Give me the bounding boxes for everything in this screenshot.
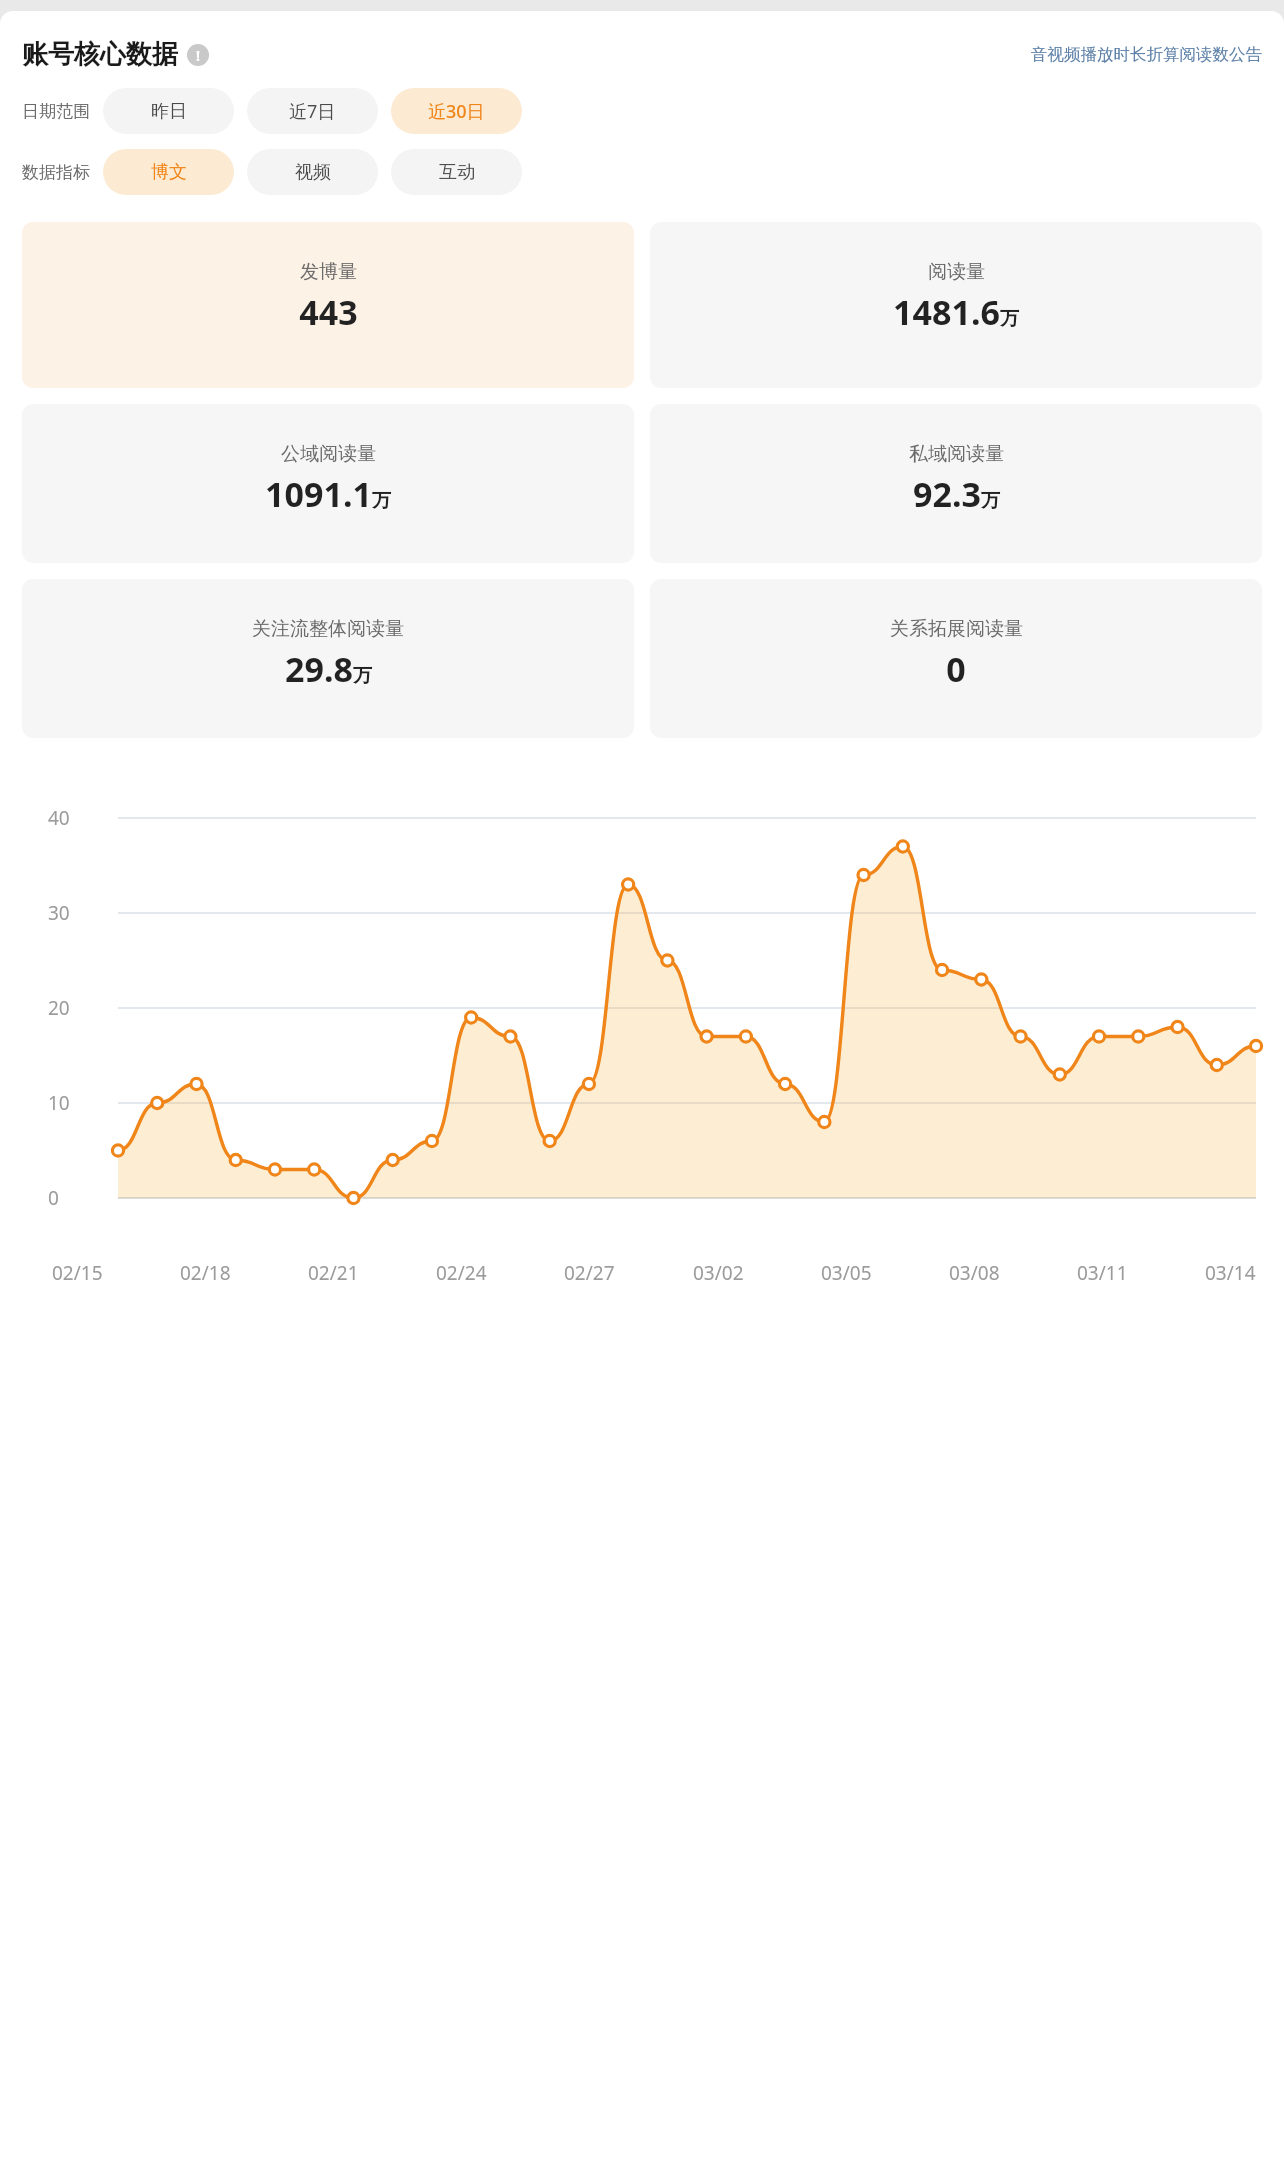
staticText: 视频 bbox=[295, 161, 331, 184]
staticText: 近7日 bbox=[289, 99, 336, 124]
staticText: 02/21 bbox=[308, 1260, 359, 1286]
button[interactable]: 公域阅读量 bbox=[22, 404, 634, 563]
staticText: 互动 bbox=[439, 161, 475, 184]
button[interactable]: 关系拓展阅读量 bbox=[650, 579, 1262, 738]
staticText: 02/27 bbox=[564, 1260, 615, 1286]
staticText: 音视频播放时长折算阅读数公告 bbox=[1031, 44, 1262, 65]
button[interactable]: 音视频播放时长折算阅读数公告 bbox=[1031, 44, 1262, 65]
button[interactable]: 视频 bbox=[247, 149, 378, 195]
staticText: 日期范围 bbox=[22, 101, 90, 122]
staticText: 发博量 bbox=[300, 260, 357, 284]
button[interactable]: 博文 bbox=[103, 149, 234, 195]
staticText: 1481.6万 bbox=[893, 289, 1019, 335]
staticText: 公域阅读量 bbox=[281, 442, 376, 466]
button[interactable]: 近30日 bbox=[391, 88, 522, 134]
staticText: 03/05 bbox=[821, 1260, 872, 1286]
staticText: 近30日 bbox=[428, 99, 485, 124]
button[interactable]: 发博量 bbox=[22, 222, 634, 388]
staticText: 03/02 bbox=[693, 1260, 744, 1286]
staticText: 29.8万 bbox=[285, 646, 372, 692]
staticText: 30 bbox=[48, 900, 70, 926]
staticText: 关注流整体阅读量 bbox=[252, 617, 404, 641]
button[interactable]: 阅读量 bbox=[650, 222, 1262, 388]
staticText: 20 bbox=[48, 995, 70, 1021]
button[interactable]: 近7日 bbox=[247, 88, 378, 134]
staticText: 私域阅读量 bbox=[909, 442, 1004, 466]
button[interactable]: 关注流整体阅读量 bbox=[22, 579, 634, 738]
staticText: ! bbox=[196, 46, 200, 65]
staticText: 02/18 bbox=[180, 1260, 231, 1286]
staticText: 03/08 bbox=[949, 1260, 1000, 1286]
button[interactable]: 私域阅读量 bbox=[650, 404, 1262, 563]
staticText: 92.3万 bbox=[913, 471, 1000, 517]
staticText: 关系拓展阅读量 bbox=[890, 617, 1023, 641]
staticText: 昨日 bbox=[151, 100, 187, 123]
staticText: 03/14 bbox=[1205, 1260, 1256, 1286]
staticText: 02/15 bbox=[52, 1260, 103, 1286]
staticText: 443 bbox=[299, 289, 358, 335]
staticText: 0 bbox=[946, 646, 966, 692]
button[interactable]: 互动 bbox=[391, 149, 522, 195]
button[interactable]: 昨日 bbox=[103, 88, 234, 134]
staticText: 02/24 bbox=[436, 1260, 487, 1286]
staticText: 账号核心数据 bbox=[22, 38, 178, 71]
staticText: 博文 bbox=[151, 161, 187, 184]
staticText: 40 bbox=[48, 805, 70, 831]
staticText: 0 bbox=[48, 1185, 59, 1211]
button[interactable]: Info bbox=[187, 44, 209, 66]
staticText: 10 bbox=[48, 1090, 70, 1116]
staticText: 03/11 bbox=[1077, 1260, 1128, 1286]
staticText: 1091.1万 bbox=[265, 471, 391, 517]
staticText: 阅读量 bbox=[928, 260, 985, 284]
staticText: 数据指标 bbox=[22, 162, 90, 183]
